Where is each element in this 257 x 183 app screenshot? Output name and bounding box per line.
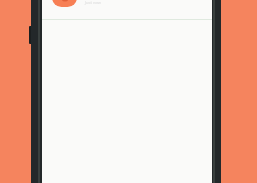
button[interactable]: Message [42, 0, 212, 19]
staticText: Just now [85, 0, 101, 5]
button[interactable]: Side button [29, 26, 32, 44]
